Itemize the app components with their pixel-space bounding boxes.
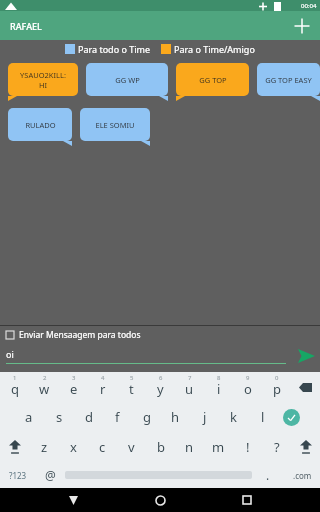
button[interactable]: Add — [290, 14, 314, 38]
staticText: r — [100, 380, 106, 398]
button[interactable]: Back — [59, 488, 87, 512]
button[interactable]: .com — [284, 462, 320, 488]
button[interactable]: ! — [233, 432, 262, 462]
staticText: 0 — [275, 374, 279, 382]
button[interactable]: d — [74, 402, 103, 432]
button[interactable]: Home — [146, 488, 174, 512]
button[interactable]: Shift — [0, 432, 30, 462]
staticText: f — [115, 408, 120, 426]
staticText: 00:04 — [301, 2, 317, 10]
button[interactable]: @ — [35, 462, 65, 488]
button[interactable]: n — [175, 432, 204, 462]
button[interactable]: 6 — [146, 372, 175, 402]
button[interactable]: v — [117, 432, 146, 462]
staticText: ?123 — [9, 470, 27, 481]
staticText: RULADO — [25, 120, 56, 130]
button[interactable]: 3 — [59, 372, 88, 402]
staticText: h — [171, 408, 180, 426]
staticText: e — [70, 380, 78, 398]
button[interactable]: f — [103, 402, 132, 432]
button[interactable]: ?123 — [0, 462, 35, 488]
button[interactable]: 8 — [204, 372, 233, 402]
button[interactable]: 2 — [30, 372, 59, 402]
button[interactable]: ELE SOMIU — [80, 108, 150, 146]
staticText: .com — [293, 470, 312, 481]
staticText: Para todo o Time — [78, 43, 151, 55]
staticText: i — [217, 380, 221, 398]
button[interactable]: 9 — [233, 372, 262, 402]
staticText: 2 — [43, 374, 47, 382]
button[interactable]: Send — [292, 343, 320, 369]
staticText: q — [11, 380, 19, 398]
staticText: l — [261, 408, 265, 426]
staticText: d — [85, 408, 93, 426]
staticText: j — [203, 408, 207, 426]
button[interactable]: GG WP — [86, 63, 168, 101]
button[interactable]: z — [30, 432, 59, 462]
button[interactable]: h — [161, 402, 190, 432]
staticText: s — [56, 408, 63, 426]
button[interactable]: . — [252, 462, 284, 488]
staticText: 8 — [217, 374, 221, 382]
staticText: t — [129, 380, 134, 398]
button[interactable]: a — [14, 402, 44, 432]
staticText: w — [39, 380, 50, 398]
button[interactable]: 4 — [88, 372, 117, 402]
staticText: n — [185, 438, 194, 456]
staticText: u — [185, 380, 194, 398]
button[interactable]: l — [248, 402, 277, 432]
staticText: GG TOP EASY — [265, 75, 312, 85]
button[interactable]: RULADO — [8, 108, 72, 146]
button[interactable]: GG TOP — [176, 63, 249, 101]
staticText: k — [230, 408, 237, 426]
staticText: 1 — [13, 374, 17, 382]
staticText: o — [244, 380, 252, 398]
staticText: . — [266, 467, 270, 483]
staticText: 4 — [101, 374, 105, 382]
button[interactable]: Shift — [291, 432, 320, 462]
button[interactable]: c — [88, 432, 117, 462]
button[interactable]: j — [190, 402, 219, 432]
button[interactable]: Enviar Mensaagem para todos — [0, 326, 320, 343]
button[interactable]: 1 — [0, 372, 30, 402]
staticText: RAFAEL — [10, 20, 42, 32]
button[interactable]: 5 — [117, 372, 146, 402]
staticText: GG TOP — [199, 75, 227, 85]
button[interactable]: Recents — [233, 488, 261, 512]
button[interactable]: Enter — [277, 402, 306, 432]
staticText: Para o Time/Amigo — [174, 43, 255, 55]
staticText: Enviar Mensaagem para todos — [19, 329, 141, 341]
staticText: GG WP — [115, 75, 140, 85]
staticText: @ — [45, 467, 56, 483]
staticText: z — [41, 438, 48, 456]
staticText: 3 — [72, 374, 76, 382]
staticText: 5 — [130, 374, 134, 382]
staticText: 7 — [188, 374, 192, 382]
button[interactable]: YSAUO2KILL: HI — [8, 63, 78, 101]
button[interactable]: g — [132, 402, 161, 432]
staticText: ? — [274, 438, 280, 456]
staticText: x — [70, 438, 77, 456]
staticText: YSAUO2KILL: HI — [20, 70, 66, 90]
button[interactable]: Para todo o Time — [65, 43, 151, 55]
button[interactable]: GG TOP EASY — [257, 63, 320, 101]
staticText: y — [157, 380, 164, 398]
button[interactable]: 7 — [175, 372, 204, 402]
staticText: 6 — [159, 374, 163, 382]
button[interactable]: s — [44, 402, 74, 432]
staticText: c — [99, 438, 106, 456]
button[interactable]: Backspace — [291, 372, 320, 402]
staticText: oi — [6, 348, 14, 360]
button[interactable]: k — [219, 402, 248, 432]
button[interactable]: x — [59, 432, 88, 462]
staticText: p — [273, 380, 281, 398]
staticText: v — [128, 438, 135, 456]
button[interactable]: Para o Time/Amigo — [161, 43, 255, 55]
button[interactable]: m — [204, 432, 233, 462]
staticText: g — [143, 408, 151, 426]
staticText: 9 — [246, 374, 250, 382]
button[interactable]: b — [146, 432, 175, 462]
button[interactable]: 0 — [262, 372, 291, 402]
button[interactable]: ? — [262, 432, 291, 462]
